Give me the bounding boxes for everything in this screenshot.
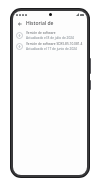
staticText: Actualizado el 8 de julio de 2024	[26, 36, 74, 40]
staticText: Actualizado el 17 de junio de 2024	[26, 47, 77, 51]
button[interactable]: Versión de software SDX5.85.10.081.4	[13, 41, 87, 52]
staticText: Historial de actualizaciones	[26, 20, 84, 27]
button[interactable]: Versión de software SDX14.18_Oct.30.1.4.…	[13, 30, 87, 41]
staticText: Versión de software SDX5.85.10.081.4	[26, 42, 83, 46]
staticText: Versión de software SDX14.18_Oct.30.1.4.…	[26, 31, 84, 35]
button[interactable]: Back	[16, 20, 24, 28]
